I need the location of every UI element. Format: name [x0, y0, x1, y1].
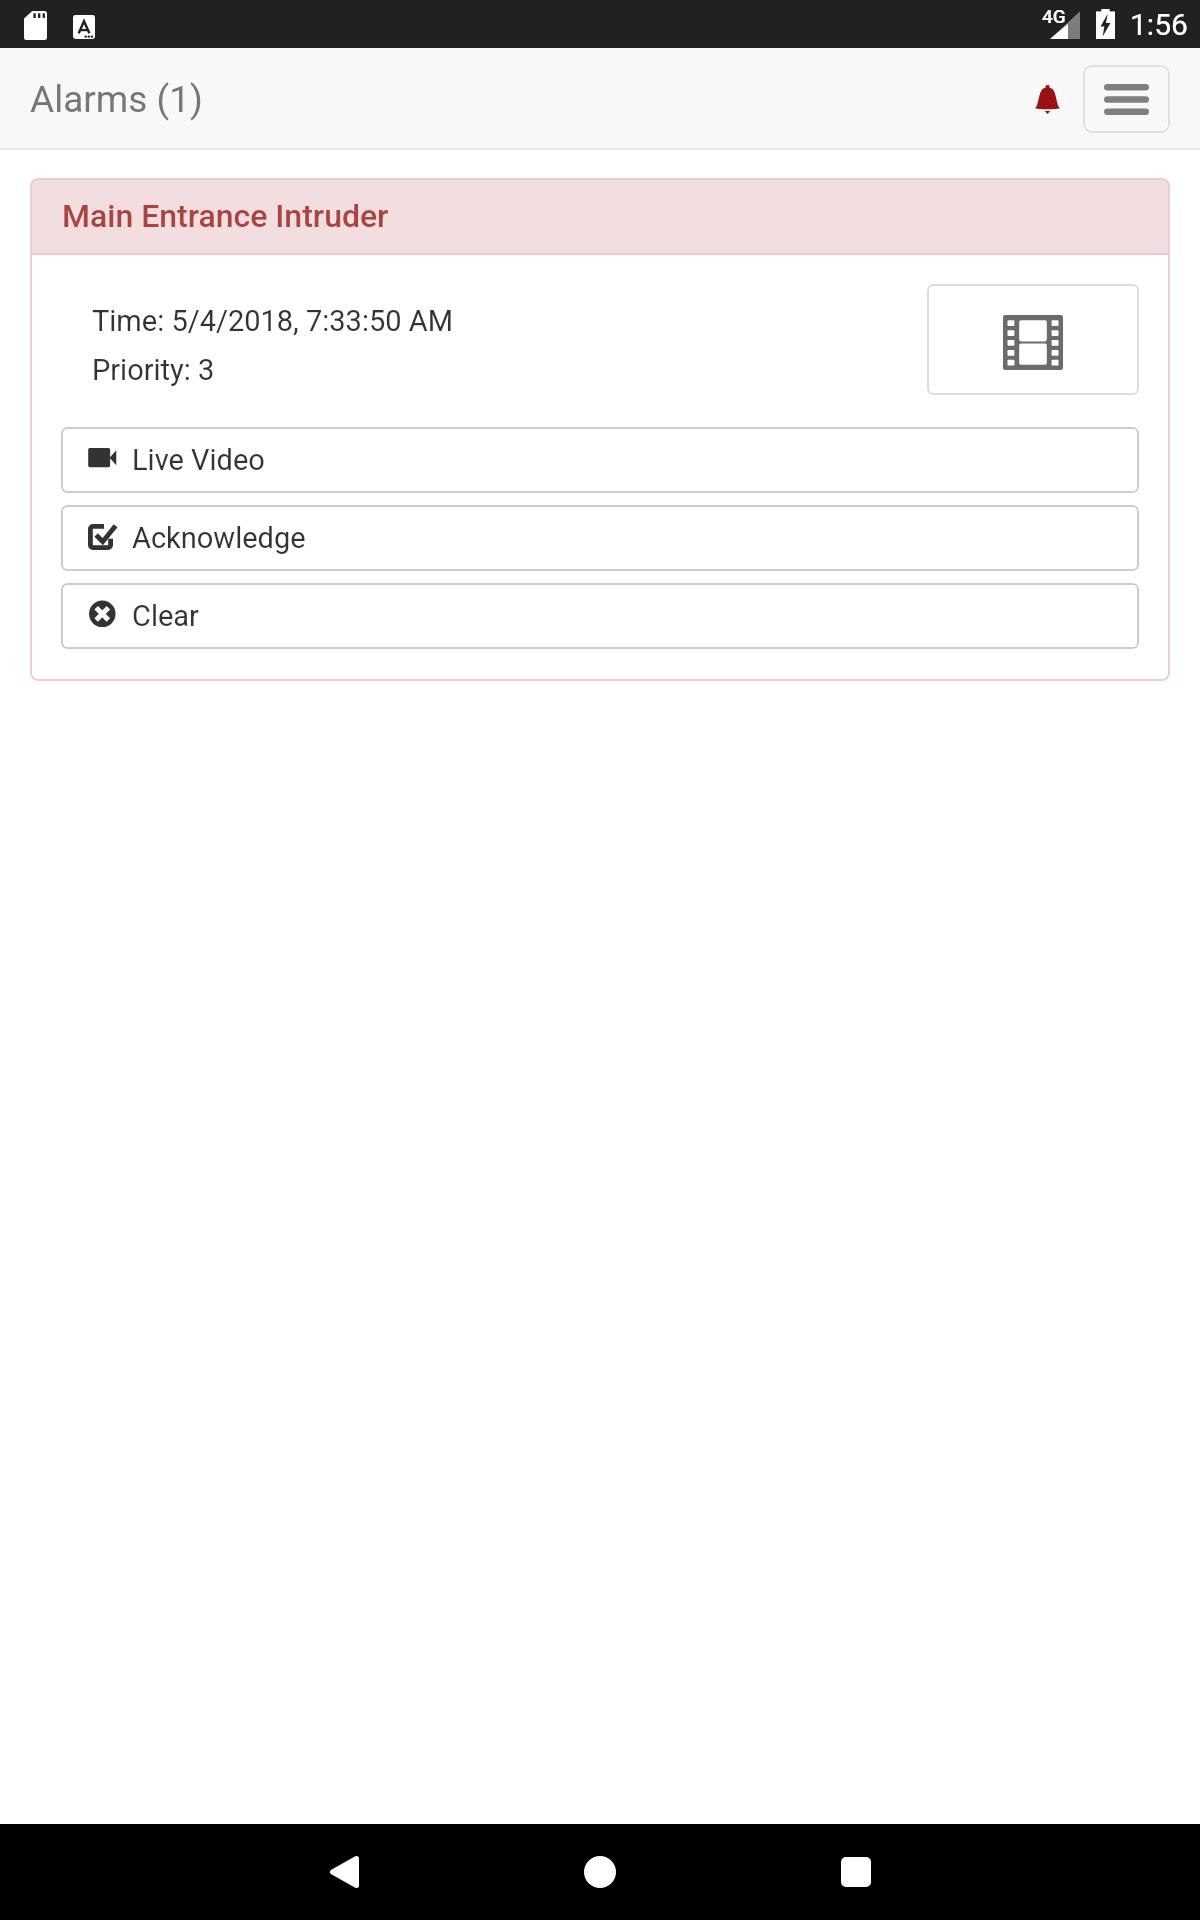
staticText: Priority: 3: [92, 353, 215, 387]
staticText: 4G: [1042, 5, 1066, 27]
staticText: 1:56: [1130, 7, 1188, 42]
staticText: Acknowledge: [132, 521, 306, 555]
button[interactable]: Menu: [1083, 65, 1170, 133]
button[interactable]: Acknowledge: [61, 505, 1139, 571]
button[interactable]: Recent apps: [806, 1824, 906, 1920]
staticText: Live Video: [132, 443, 265, 477]
button[interactable]: Clear: [61, 583, 1139, 649]
staticText: Time: 5/4/2018, 7:33:50 AM: [92, 304, 453, 338]
staticText: Main Entrance Intruder: [62, 197, 389, 235]
button[interactable]: Alarm notifications: [1014, 71, 1070, 127]
button[interactable]: Recorded video: [927, 284, 1139, 395]
button[interactable]: Live Video: [61, 427, 1139, 493]
staticText: Alarms (1): [30, 78, 203, 121]
button[interactable]: Back: [294, 1824, 394, 1920]
staticText: Clear: [132, 599, 199, 633]
button[interactable]: Home: [550, 1824, 650, 1920]
